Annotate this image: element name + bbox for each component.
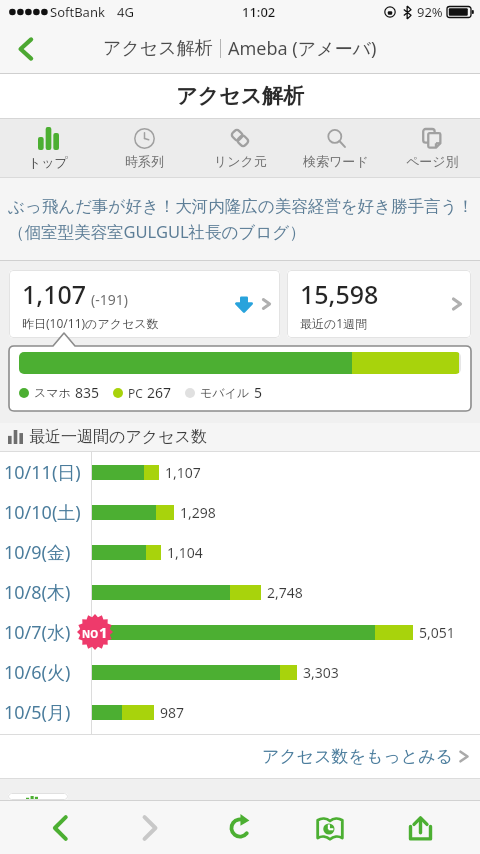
button[interactable]: 検索ワード [288, 119, 384, 177]
button[interactable]: Analytics [302, 802, 358, 854]
staticText: 4G [117, 3, 134, 21]
staticText: 検索ワード [303, 153, 369, 169]
staticText: 10/6(火) [4, 660, 71, 685]
staticText: 987 [160, 703, 185, 722]
staticText: 3,303 [303, 663, 339, 682]
staticText: 1,107 [165, 463, 201, 482]
staticText: ぶっ飛んだ事が好き！大河内隆広の美容経営を好き勝手言う！（個室型美容室GULGU… [8, 196, 474, 243]
staticText: 1 [99, 622, 108, 642]
button[interactable]: 1,107 [9, 270, 280, 338]
staticText: SoftBank [50, 3, 105, 21]
staticText: 10/8(木) [4, 580, 71, 605]
button[interactable]: 時系列 [96, 119, 192, 177]
staticText: 11:02 [242, 3, 276, 21]
staticText: (-191) [91, 290, 128, 309]
staticText: 2,748 [267, 583, 303, 602]
staticText: 最近一週間のアクセス数 [29, 427, 207, 447]
staticText: モバイル [200, 385, 250, 400]
staticText: アクセス解析 [176, 83, 304, 109]
staticText: 267 [147, 383, 172, 402]
button[interactable]: トップ [0, 119, 96, 177]
staticText: 10/10(土) [4, 500, 81, 525]
button[interactable]: Back [32, 802, 88, 854]
button[interactable]: 15,598 [287, 270, 471, 338]
button[interactable]: Reload [212, 802, 268, 854]
staticText: 5,051 [419, 623, 455, 642]
staticText: リンク元 [214, 153, 267, 169]
staticText: アクセス数をもっとみる [262, 746, 453, 767]
staticText: 10/11(日) [4, 460, 81, 485]
button[interactable]: Back [0, 24, 52, 73]
staticText: 10/5(月) [4, 700, 71, 725]
staticText: 1,104 [167, 543, 203, 562]
staticText: 10/7(水) [4, 620, 71, 645]
button[interactable]: リンク元 [192, 119, 288, 177]
staticText: 昨日(10/11)のアクセス数 [22, 315, 159, 331]
button[interactable]: Share [392, 802, 448, 854]
button[interactable]: Forward [122, 802, 178, 854]
staticText: PC [128, 385, 143, 401]
staticText: アクセス解析 [103, 37, 213, 60]
button[interactable]: ページ別 [384, 119, 480, 177]
staticText: 時系列 [125, 153, 164, 169]
staticText: Ameba (アメーバ) [228, 36, 377, 61]
staticText: 10/9(金) [4, 540, 71, 565]
staticText: 5 [254, 383, 263, 402]
staticText: NO [82, 627, 99, 641]
staticText: 92% [417, 3, 443, 21]
staticText: 835 [75, 383, 100, 402]
button[interactable]: アクセス数をもっとみる [0, 735, 480, 778]
staticText: スマホ [34, 385, 71, 400]
staticText: 最近の1週間 [300, 315, 368, 331]
staticText: 1,107 [22, 277, 87, 311]
staticText: ページ別 [406, 153, 459, 169]
staticText: トップ [28, 154, 68, 170]
staticText: 1,298 [180, 503, 216, 522]
staticText: 15,598 [300, 277, 379, 311]
